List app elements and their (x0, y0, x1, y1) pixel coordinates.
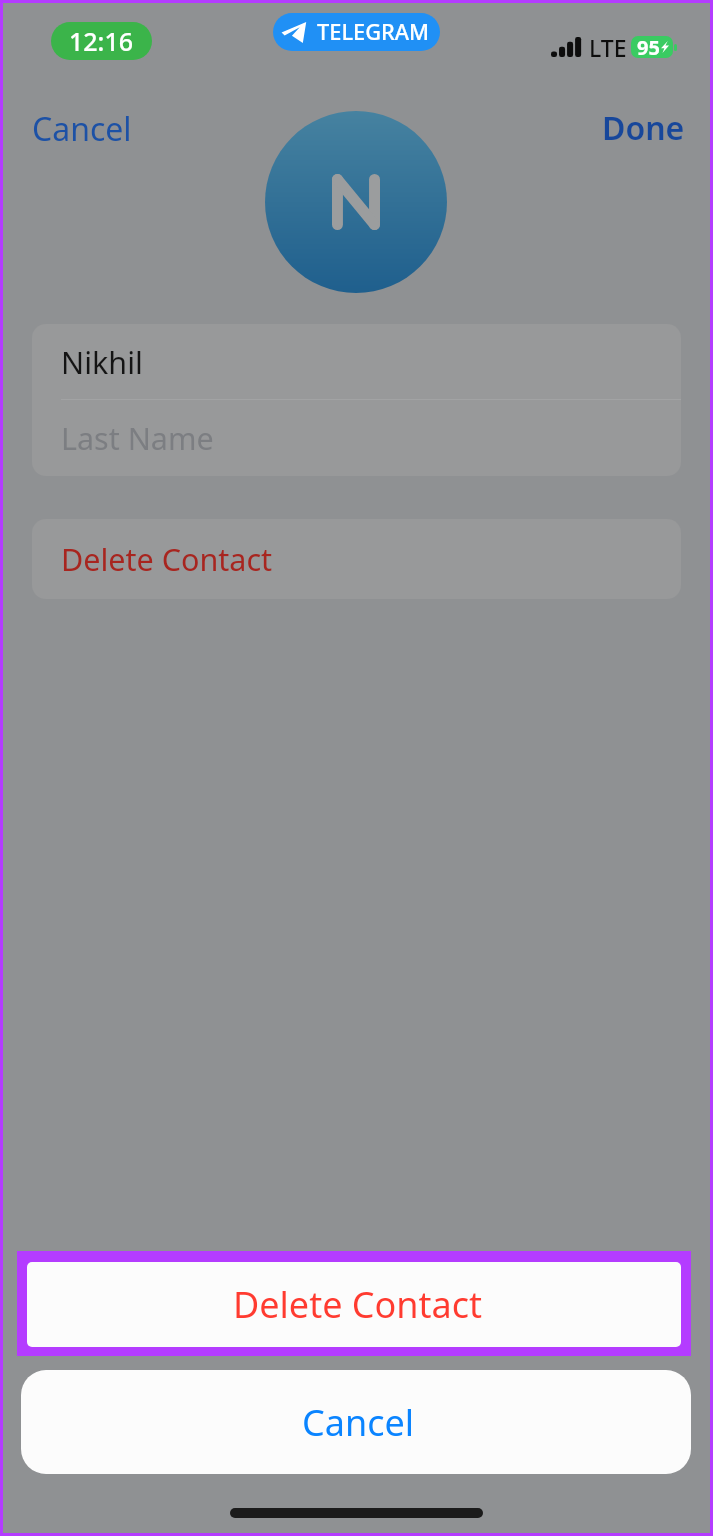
other: Battery 95 percent charging (631, 36, 673, 58)
button[interactable]: Last Name (32, 400, 681, 476)
button[interactable]: Cancel (21, 1370, 691, 1474)
button[interactable]: Delete Contact (32, 519, 681, 599)
other: Telegram (281, 22, 307, 43)
other: Cellular signal (551, 37, 583, 57)
staticText: LTE (589, 32, 627, 63)
staticText: Cancel (302, 1398, 415, 1447)
staticText: 95 (637, 34, 660, 61)
staticText: Delete Contact (61, 538, 273, 580)
staticText: Delete Contact (233, 1280, 483, 1329)
button[interactable]: Done (585, 98, 701, 158)
staticText: TELEGRAM (317, 17, 430, 47)
staticText: Last Name (61, 417, 214, 459)
staticText: Cancel (32, 107, 132, 151)
staticText: Done (602, 106, 685, 150)
staticText: 12:16 (69, 24, 134, 58)
button[interactable]: Nikhil (32, 324, 681, 399)
button[interactable]: Delete Contact (27, 1262, 681, 1347)
staticText: Nikhil (61, 341, 143, 383)
button[interactable]: Cancel (15, 99, 149, 159)
